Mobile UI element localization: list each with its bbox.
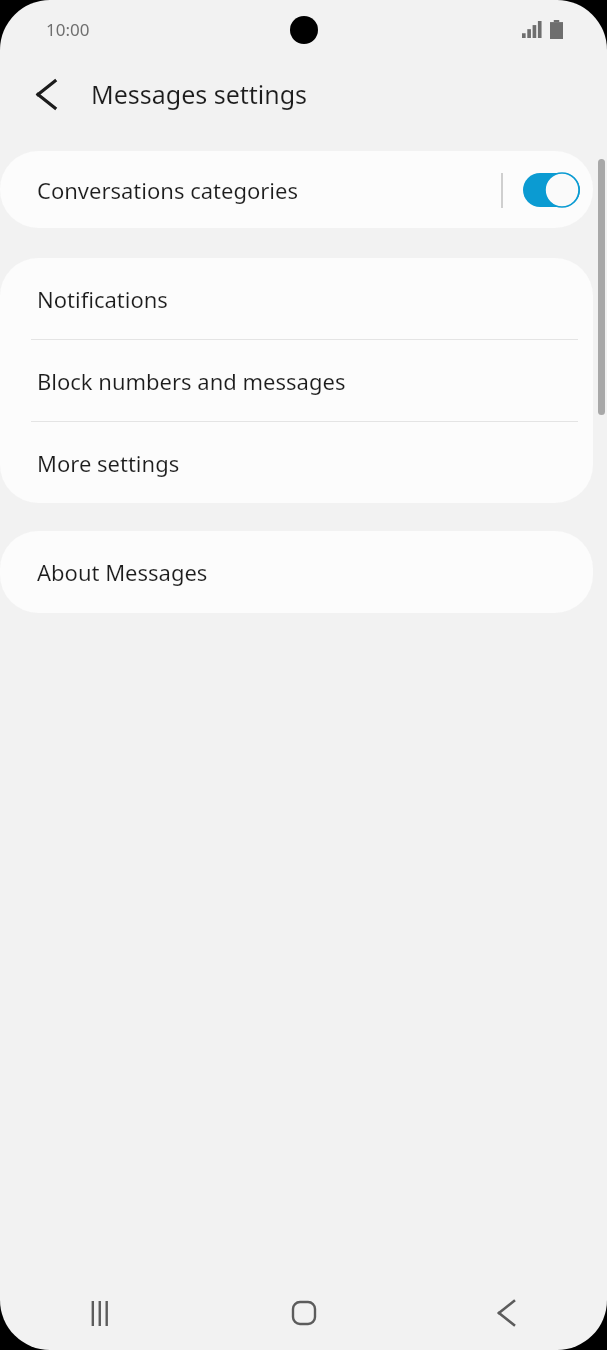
staticText: 10:00 xyxy=(46,18,90,41)
button[interactable]: Conversations categories xyxy=(0,151,593,228)
button[interactable]: Conversations categories toggle xyxy=(523,172,580,208)
button[interactable]: Block numbers and messages xyxy=(0,340,593,421)
button[interactable]: More settings xyxy=(0,422,593,503)
staticText: About Messages xyxy=(37,557,208,587)
button[interactable]: Notifications xyxy=(0,258,593,339)
staticText: More settings xyxy=(37,448,180,478)
button[interactable]: Recent apps xyxy=(0,1276,203,1350)
button[interactable]: Home xyxy=(203,1276,405,1350)
staticText: Notifications xyxy=(37,284,168,314)
staticText: Block numbers and messages xyxy=(37,366,346,396)
button[interactable]: Back xyxy=(405,1276,607,1350)
button[interactable]: Back xyxy=(22,70,70,118)
button[interactable]: About Messages xyxy=(0,531,593,613)
staticText: Conversations categories xyxy=(37,175,298,205)
staticText: Messages settings xyxy=(91,77,308,111)
